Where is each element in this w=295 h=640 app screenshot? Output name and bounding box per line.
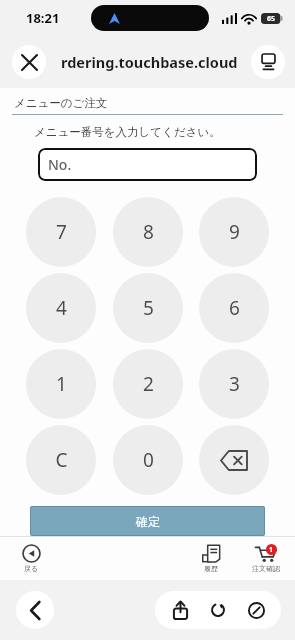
button[interactable]: 1 — [243, 544, 289, 573]
button[interactable]: 3 — [199, 349, 269, 419]
button[interactable]: 確定 — [30, 506, 265, 536]
staticText: No. — [48, 155, 72, 174]
button[interactable]: Page settings — [251, 45, 285, 79]
button[interactable]: Back — [16, 591, 54, 629]
button[interactable]: Backspace — [199, 425, 269, 495]
staticText: 2 — [143, 371, 154, 397]
staticText: 0 — [143, 447, 154, 473]
staticText: 4 — [56, 295, 67, 321]
button[interactable]: No. — [38, 148, 257, 181]
button[interactable]: 履歴 — [189, 544, 233, 573]
staticText: メニュー番号を入力してください。 — [34, 125, 295, 139]
staticText: C — [55, 447, 68, 473]
staticText: 3 — [229, 371, 240, 397]
button[interactable]: 2 — [113, 349, 183, 419]
button[interactable]: 戻る — [8, 544, 54, 573]
button[interactable]: 9 — [199, 197, 269, 267]
staticText: 履歴 — [204, 564, 218, 573]
button[interactable]: 5 — [113, 273, 183, 343]
staticText: 9 — [229, 219, 240, 245]
staticText: 1 — [56, 371, 67, 397]
button[interactable]: Close — [12, 45, 46, 79]
staticText: 注文確認 — [252, 564, 280, 573]
button[interactable]: 6 — [199, 273, 269, 343]
staticText: 確定 — [136, 514, 160, 529]
button[interactable]: 8 — [113, 197, 183, 267]
staticText: 18:21 — [26, 9, 60, 27]
staticText: 5 — [143, 295, 154, 321]
staticText: 65 — [267, 14, 276, 24]
staticText: 8 — [143, 219, 154, 245]
staticText: 戻る — [24, 564, 39, 573]
button[interactable]: 0 — [113, 425, 183, 495]
staticText: 6 — [229, 295, 240, 321]
staticText: 7 — [56, 219, 67, 245]
staticText: 1 — [269, 545, 274, 555]
button[interactable]: 4 — [26, 273, 96, 343]
staticText: メニューのご注文 — [14, 96, 108, 110]
button[interactable]: 7 — [26, 197, 96, 267]
button[interactable]: Open in Safari — [237, 591, 275, 629]
button[interactable]: C — [26, 425, 96, 495]
staticText: rdering.touchbase.cloud — [61, 52, 238, 72]
button[interactable]: Share — [161, 591, 199, 629]
button[interactable]: 1 — [26, 349, 96, 419]
button[interactable]: Reload — [199, 591, 237, 629]
